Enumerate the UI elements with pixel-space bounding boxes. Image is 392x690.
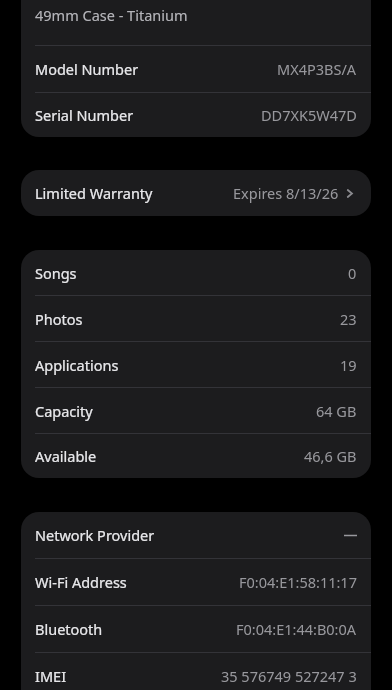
other: No provider (344, 529, 357, 542)
button[interactable]: Wi-Fi Address (21, 559, 371, 605)
staticText: 64 GB (316, 401, 357, 421)
staticText: Network Provider (35, 525, 155, 545)
staticText: Available (35, 446, 97, 466)
button[interactable]: Network Provider (21, 512, 371, 558)
button[interactable]: Model Number (21, 46, 371, 92)
button[interactable]: Songs (21, 250, 371, 295)
button[interactable]: Photos (21, 296, 371, 341)
staticText: Applications (35, 355, 119, 375)
staticText: IMEI (35, 666, 67, 686)
staticText: 19 (340, 355, 357, 375)
staticText: Photos (35, 309, 83, 329)
staticText: Serial Number (35, 105, 134, 125)
button[interactable]: Serial Number (21, 93, 371, 137)
button[interactable]: Applications (21, 342, 371, 387)
staticText: F0:04:E1:44:B0:0A (236, 619, 357, 639)
button[interactable]: Limited Warranty (21, 170, 371, 216)
staticText: F0:04:E1:58:11:17 (239, 572, 357, 592)
staticText: 49mm Case - Titanium (35, 5, 188, 25)
staticText: 23 (340, 309, 357, 329)
button[interactable]: Model Detail (21, 0, 371, 45)
staticText: Capacity (35, 401, 93, 421)
staticText: MX4P3BS/A (277, 59, 357, 79)
staticText: Limited Warranty (35, 183, 153, 203)
staticText: Songs (35, 263, 77, 283)
staticText: 46,6 GB (304, 446, 357, 466)
button[interactable]: IMEI (21, 653, 371, 690)
staticText: 35 576749 527247 3 (221, 666, 357, 686)
staticText: DD7XK5W47D (261, 105, 357, 125)
button[interactable]: Bluetooth (21, 606, 371, 652)
staticText: Model Number (35, 59, 139, 79)
staticText: 0 (348, 263, 357, 283)
button[interactable]: Capacity (21, 388, 371, 433)
staticText: Bluetooth (35, 619, 103, 639)
other: Open (344, 187, 357, 200)
button[interactable]: Available (21, 434, 371, 478)
staticText: Expires 8/13/26 (233, 183, 339, 203)
staticText: Wi-Fi Address (35, 572, 127, 592)
